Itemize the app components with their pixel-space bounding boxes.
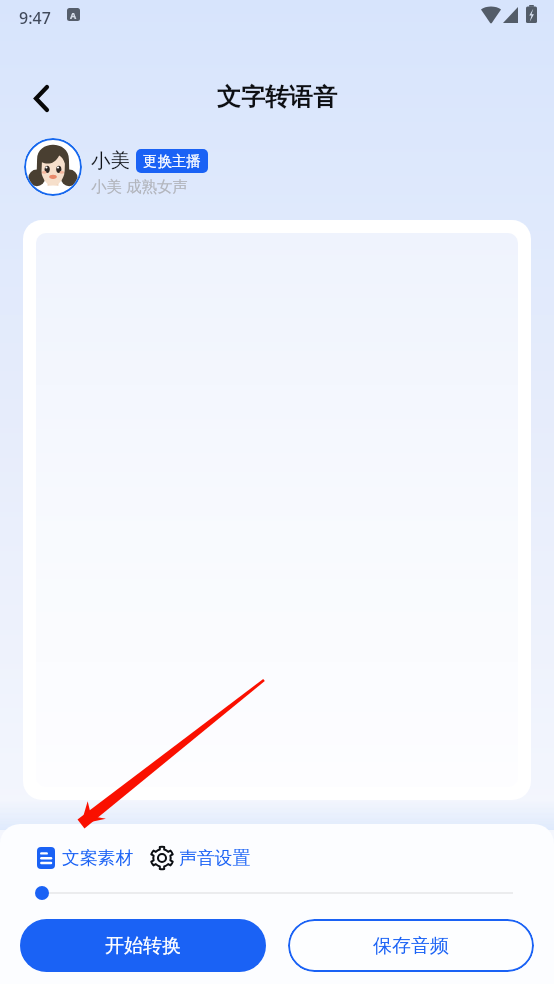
button[interactable]: Voice settings xyxy=(149,845,251,871)
staticText: 保存音频 xyxy=(373,934,449,958)
staticText: 文字转语音 xyxy=(217,82,337,112)
staticText: 文案素材 xyxy=(62,847,134,869)
button[interactable] xyxy=(35,880,519,906)
staticText: 小美 xyxy=(91,148,130,173)
staticText: 9:47 xyxy=(19,7,51,29)
button[interactable]: Script material xyxy=(37,847,134,869)
other: Script material xyxy=(37,847,55,869)
button[interactable]: Back xyxy=(18,75,64,121)
staticText: 声音设置 xyxy=(179,847,251,869)
staticText: 开始转换 xyxy=(105,934,181,958)
other: Voice settings xyxy=(149,845,175,871)
staticText: 小美 成熟女声 xyxy=(91,175,189,196)
button[interactable]: 保存音频 xyxy=(288,919,534,972)
button[interactable]: 小美 xyxy=(0,133,554,201)
button[interactable]: 更换主播 xyxy=(136,149,208,173)
button[interactable]: 开始转换 xyxy=(20,919,266,972)
staticText: A xyxy=(70,9,77,21)
button[interactable] xyxy=(36,233,518,787)
staticText: 更换主播 xyxy=(143,152,201,170)
